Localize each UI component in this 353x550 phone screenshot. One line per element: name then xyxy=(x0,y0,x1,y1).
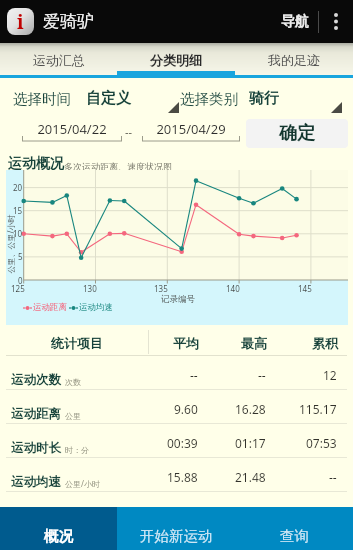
button[interactable]: 骑行 xyxy=(243,86,343,113)
staticText: i xyxy=(17,9,24,35)
button[interactable]: 运动均速 xyxy=(0,458,353,492)
staticText: 00:39 xyxy=(167,435,198,451)
button[interactable]: 查询 xyxy=(235,507,353,550)
staticText: 运动均速 xyxy=(79,302,113,313)
staticText: 查询 xyxy=(280,527,309,545)
staticText: -- xyxy=(190,367,198,383)
staticText: 0 xyxy=(18,275,23,286)
staticText: 开始新运动 xyxy=(140,527,213,545)
staticText: 公里、公里/小时 xyxy=(4,153,15,273)
button[interactable]: 自定义 xyxy=(80,86,180,113)
button[interactable]: 开始新运动 xyxy=(117,507,235,550)
staticText: 5 xyxy=(18,251,23,262)
button[interactable]: 我的足迹 xyxy=(235,43,353,76)
staticText: 01:17 xyxy=(235,435,266,451)
button[interactable]: 运动汇总 xyxy=(0,43,117,76)
staticText: 导航 xyxy=(281,13,309,31)
staticText: 最高 xyxy=(241,335,267,351)
staticText: 12 xyxy=(323,367,337,383)
staticText: 10 xyxy=(13,228,23,239)
staticText: 2015/04/29 xyxy=(142,120,240,138)
staticText: 2015/04/22 xyxy=(22,120,122,138)
staticText: 骑行 xyxy=(249,89,279,108)
button[interactable]: 确定 xyxy=(246,119,348,148)
button[interactable]: 运动距离 xyxy=(0,390,353,424)
staticText: 运动均速 xyxy=(11,474,61,490)
staticText: 多次运动距离、速度状况图 xyxy=(64,161,172,172)
staticText: 次数 xyxy=(65,377,81,387)
staticText: 时：分 xyxy=(65,445,89,455)
staticText: 运动次数 xyxy=(11,372,61,388)
staticText: 135 xyxy=(154,283,168,294)
staticText: 20 xyxy=(13,182,23,193)
staticText: 概况 xyxy=(44,527,73,545)
staticText: 140 xyxy=(226,283,240,294)
button[interactable]: 分类明细 xyxy=(117,43,235,76)
staticText: 选择时间 xyxy=(13,90,71,108)
staticText: 145 xyxy=(298,283,312,294)
staticText: 分类明细 xyxy=(150,52,202,68)
staticText: -- xyxy=(125,124,133,139)
staticText: 运动汇总 xyxy=(33,52,85,68)
staticText: 115.17 xyxy=(299,401,337,417)
staticText: 07:53 xyxy=(306,435,337,451)
staticText: 公里/小时 xyxy=(65,478,100,489)
staticText: 15.88 xyxy=(167,469,198,485)
staticText: 累积 xyxy=(312,335,338,351)
staticText: 公里 xyxy=(65,411,81,421)
staticText: 选择类别 xyxy=(180,90,238,108)
button[interactable]: 运动时长 xyxy=(0,424,353,458)
staticText: 16.28 xyxy=(235,401,266,417)
staticText: 运动距离 xyxy=(11,406,61,422)
staticText: 我的足迹 xyxy=(268,52,320,68)
staticText: 125 xyxy=(11,283,25,294)
staticText: 9.60 xyxy=(174,401,198,417)
staticText: -- xyxy=(329,469,337,485)
button[interactable]: 概况 xyxy=(0,507,117,550)
staticText: 21.48 xyxy=(235,469,266,485)
button[interactable]: 运动次数 xyxy=(0,356,353,390)
staticText: 运动概况 xyxy=(8,155,64,173)
staticText: 统计项目 xyxy=(51,335,103,351)
staticText: 运动时长 xyxy=(11,440,61,456)
staticText: 自定义 xyxy=(86,89,131,108)
staticText: 15 xyxy=(13,205,23,216)
staticText: 记录编号 xyxy=(161,294,195,305)
staticText: 平均 xyxy=(173,335,199,351)
button[interactable]: More options xyxy=(319,0,353,43)
button[interactable]: 2015/04/29 xyxy=(142,117,240,142)
staticText: 爱骑驴 xyxy=(43,11,94,32)
staticText: -- xyxy=(258,367,266,383)
button[interactable]: 导航 xyxy=(272,5,318,39)
staticText: 确定 xyxy=(279,122,315,145)
staticText: 130 xyxy=(83,283,97,294)
button[interactable]: 2015/04/22 xyxy=(22,117,122,142)
staticText: 运动距离 xyxy=(33,302,67,313)
